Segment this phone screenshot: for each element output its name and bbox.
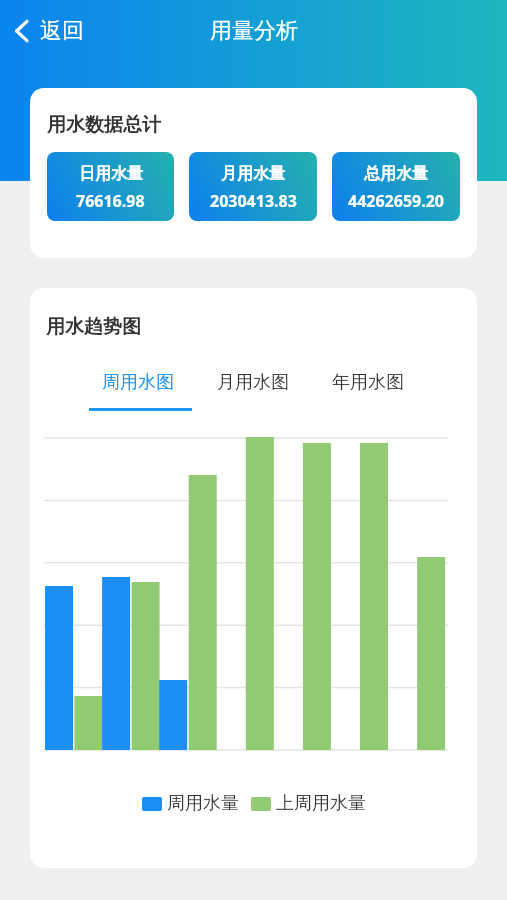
staticText: 2030413.83 — [210, 190, 297, 212]
staticText: 月用水图 — [217, 371, 289, 394]
staticText: 上周用水量 — [276, 792, 366, 815]
staticText: 日用水量 — [79, 164, 143, 184]
button[interactable]: 总用水量 — [332, 152, 460, 221]
button[interactable]: 月用水图 — [195, 367, 310, 397]
button[interactable]: 月用水量 — [189, 152, 317, 221]
staticText: 用水趋势图 — [46, 315, 141, 339]
staticText: 总用水量 — [364, 164, 428, 184]
button[interactable]: 返回 — [13, 17, 84, 45]
staticText: 44262659.20 — [348, 190, 445, 212]
button[interactable]: 年用水图 — [310, 367, 425, 397]
button[interactable]: 周用水图 — [80, 367, 195, 397]
staticText: 月用水量 — [221, 164, 285, 184]
staticText: 返回 — [40, 17, 84, 45]
staticText: 周用水图 — [102, 371, 174, 394]
staticText: 周用水量 — [167, 792, 239, 815]
button[interactable]: 日用水量 — [47, 152, 174, 221]
staticText: 76616.98 — [76, 190, 145, 212]
staticText: 年用水图 — [332, 371, 404, 394]
staticText: 用水数据总计 — [47, 113, 161, 137]
staticText: 用量分析 — [210, 17, 298, 45]
